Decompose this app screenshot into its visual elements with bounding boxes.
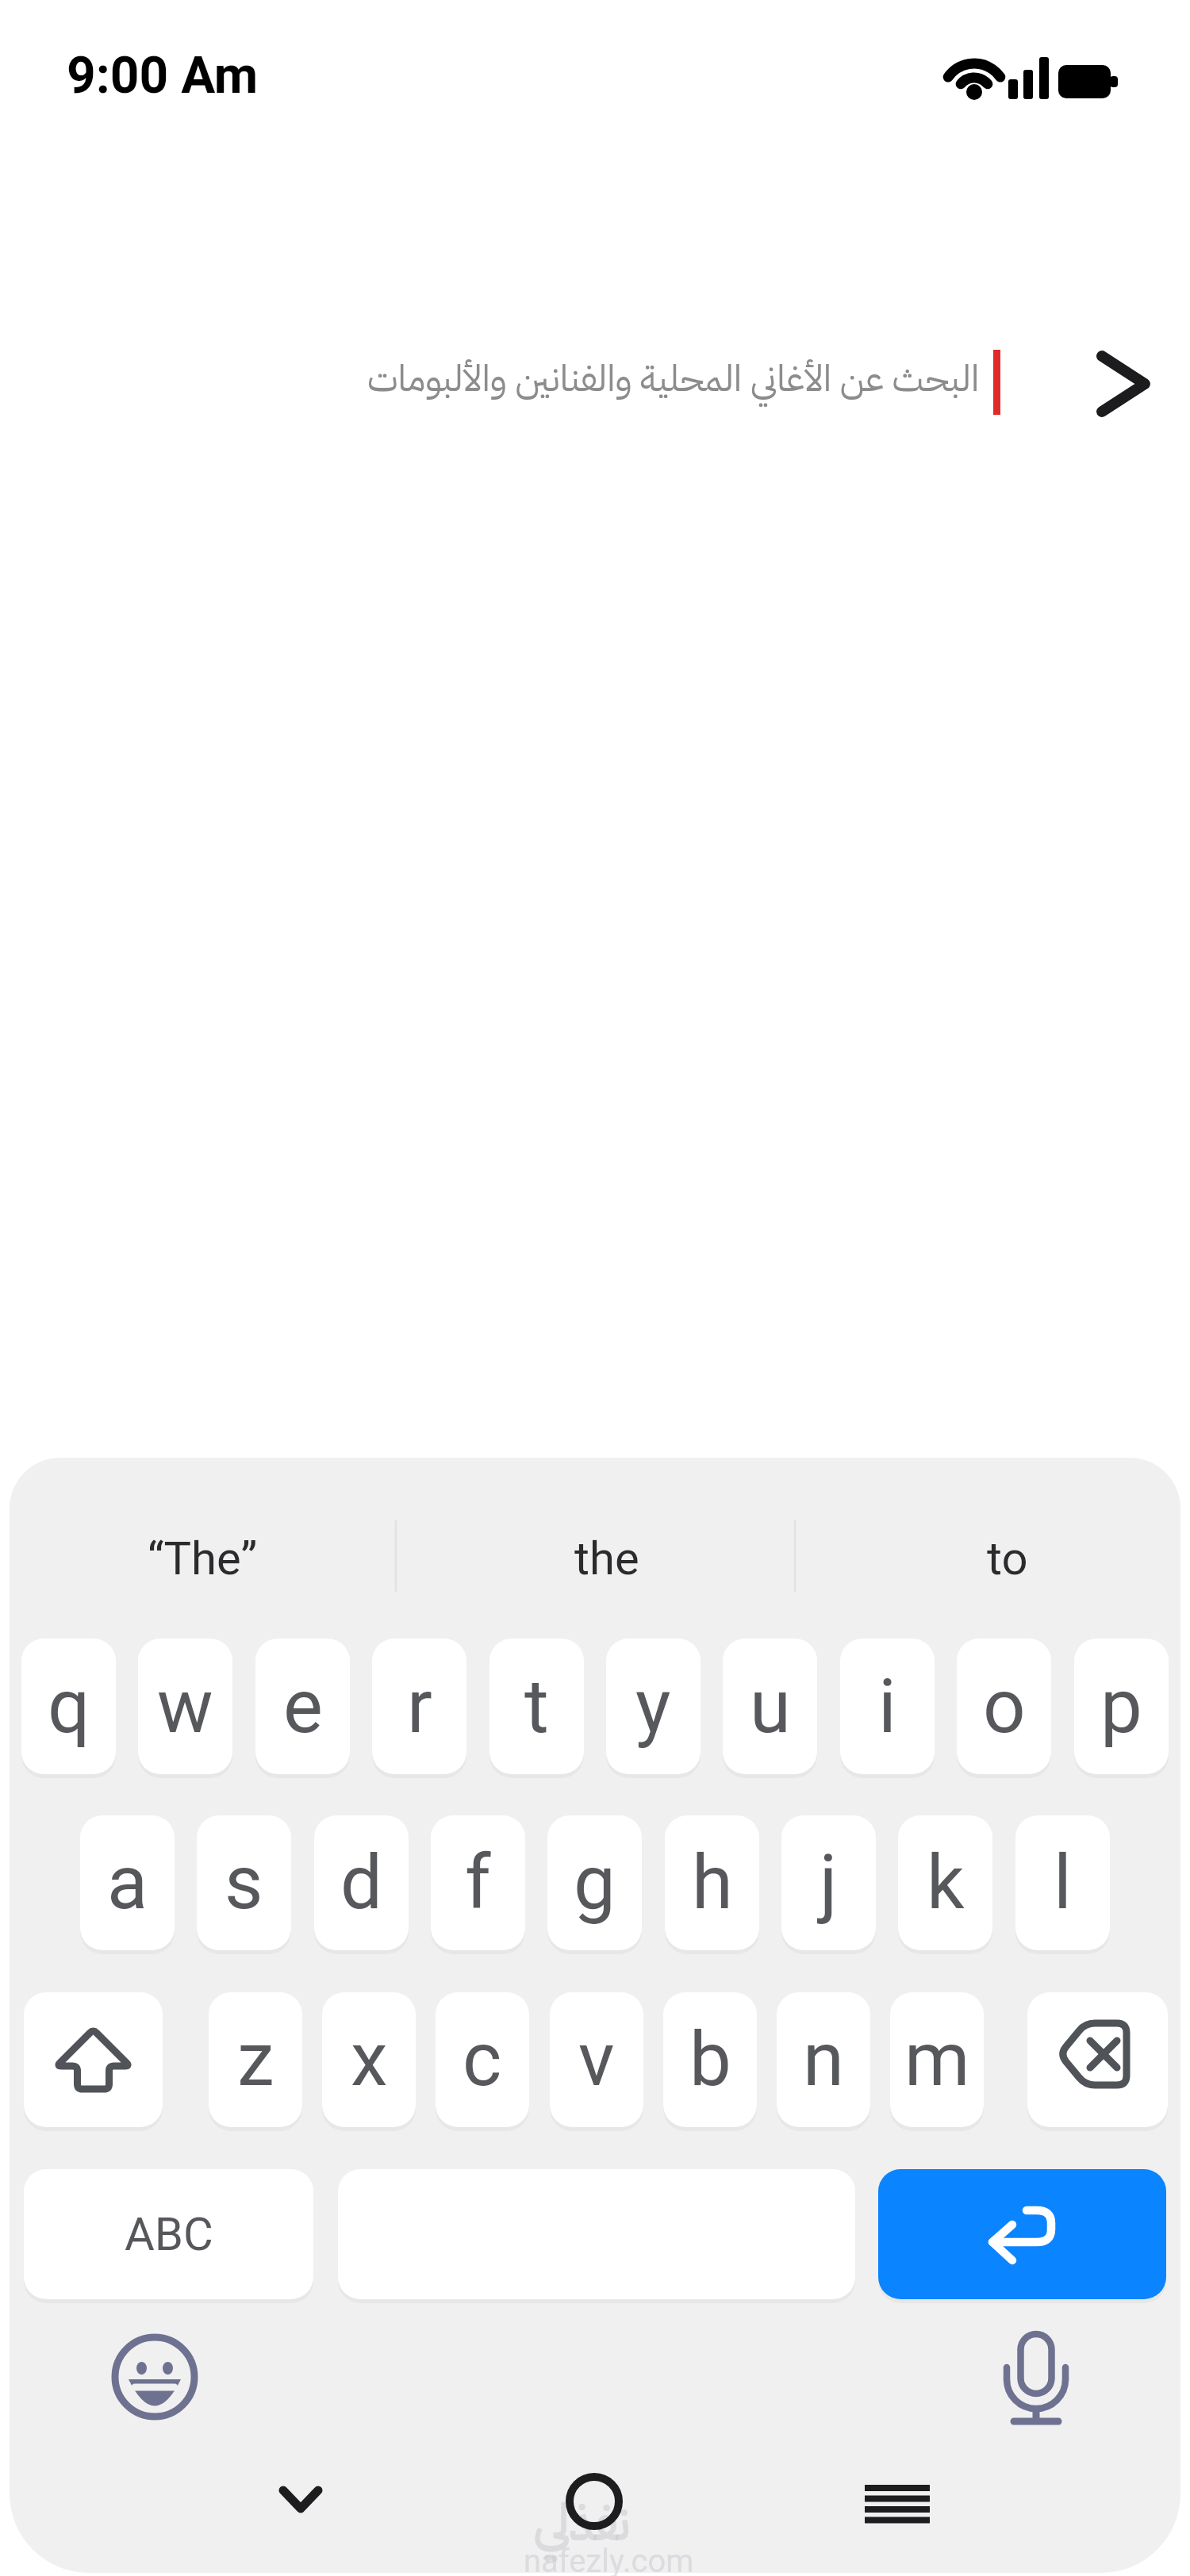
staticText: g xyxy=(574,1839,616,1926)
staticText: a xyxy=(107,1839,148,1926)
staticText: h xyxy=(692,1839,733,1926)
button[interactable]: u xyxy=(723,1639,817,1774)
button[interactable]: n xyxy=(777,1992,870,2127)
staticText: e xyxy=(283,1663,323,1750)
button[interactable]: f xyxy=(431,1815,525,1950)
button[interactable]: z xyxy=(209,1992,302,2127)
staticText: s xyxy=(225,1839,263,1926)
button[interactable]: “The” xyxy=(24,1507,381,1610)
staticText: x xyxy=(351,2016,388,2103)
staticText: j xyxy=(820,1839,838,1926)
button[interactable]: s xyxy=(197,1815,291,1950)
staticText: r xyxy=(407,1663,432,1750)
staticText: o xyxy=(983,1663,1026,1750)
button[interactable]: m xyxy=(890,1992,984,2127)
button[interactable]: p xyxy=(1074,1639,1169,1774)
button[interactable]: k xyxy=(898,1815,992,1950)
button[interactable]: l xyxy=(1015,1815,1110,1950)
button[interactable]: y xyxy=(606,1639,701,1774)
button[interactable]: g xyxy=(547,1815,642,1950)
button[interactable] xyxy=(850,2455,945,2551)
button[interactable]: البحث عن الأغاني المحلية والفنانين والأل… xyxy=(226,341,980,416)
button[interactable]: t xyxy=(489,1639,584,1774)
staticText: l xyxy=(1054,1839,1072,1926)
button[interactable]: ABC xyxy=(24,2169,313,2299)
button[interactable]: b xyxy=(663,1992,757,2127)
staticText: p xyxy=(1100,1663,1142,1750)
staticText: d xyxy=(340,1839,383,1926)
button[interactable]: j xyxy=(781,1815,876,1950)
staticText: the xyxy=(574,1531,639,1585)
staticText: ABC xyxy=(125,2207,213,2261)
staticText: البحث عن الأغاني المحلية والفنانين والأل… xyxy=(367,351,980,406)
button[interactable]: e xyxy=(255,1639,350,1774)
button[interactable]: v xyxy=(550,1992,643,2127)
button[interactable]: the xyxy=(428,1507,785,1610)
staticText: i xyxy=(878,1663,896,1750)
staticText: “The” xyxy=(148,1531,258,1585)
staticText: nafezly.com xyxy=(524,2543,694,2576)
button[interactable]: o xyxy=(957,1639,1051,1774)
staticText: u xyxy=(750,1663,791,1750)
button[interactable]: h xyxy=(665,1815,759,1950)
button[interactable]: r xyxy=(372,1639,466,1774)
button[interactable]: x xyxy=(322,1992,416,2127)
button[interactable]: i xyxy=(840,1639,935,1774)
staticText: w xyxy=(157,1663,213,1750)
button[interactable]: a xyxy=(80,1815,175,1950)
staticText: 9:00 Am xyxy=(67,46,259,105)
button[interactable] xyxy=(103,2325,206,2428)
button[interactable]: c xyxy=(436,1992,529,2127)
button[interactable] xyxy=(984,2325,1087,2428)
staticText: y xyxy=(635,1663,671,1750)
staticText: z xyxy=(237,2016,274,2103)
button[interactable]: w xyxy=(138,1639,232,1774)
button[interactable]: to xyxy=(829,1507,1186,1610)
button[interactable] xyxy=(1079,337,1166,424)
button[interactable] xyxy=(1027,1992,1168,2127)
staticText: c xyxy=(463,2016,502,2103)
staticText: to xyxy=(987,1531,1028,1585)
staticText: b xyxy=(689,2016,731,2103)
button[interactable] xyxy=(878,2169,1166,2299)
staticText: k xyxy=(927,1839,965,1926)
button[interactable] xyxy=(547,2454,642,2549)
staticText: f xyxy=(465,1839,491,1926)
button[interactable]: q xyxy=(21,1639,116,1774)
staticText: v xyxy=(578,2016,615,2103)
staticText: m xyxy=(904,2016,970,2103)
staticText: t xyxy=(524,1663,549,1750)
staticText: n xyxy=(803,2016,844,2103)
staticText: q xyxy=(48,1663,90,1750)
button[interactable] xyxy=(254,2455,349,2550)
button[interactable]: d xyxy=(314,1815,409,1950)
button[interactable] xyxy=(24,1992,163,2127)
staticText: نفذلي xyxy=(534,2486,631,2560)
